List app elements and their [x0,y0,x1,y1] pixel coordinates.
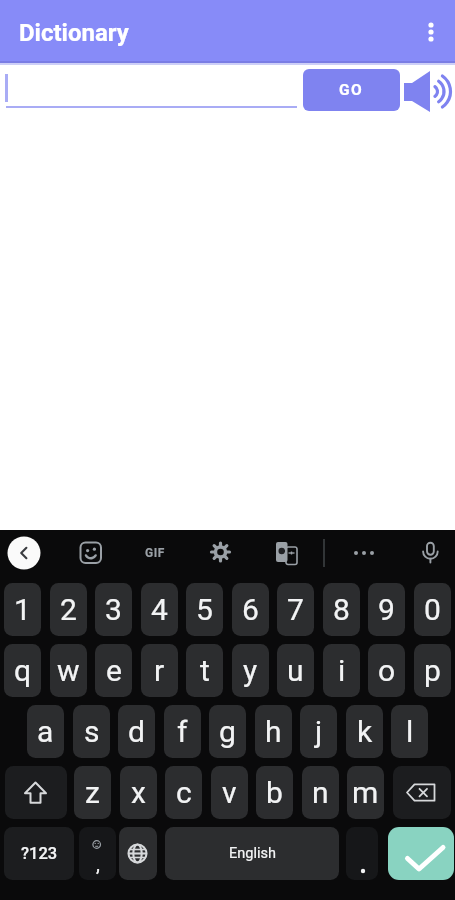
button[interactable]: 2 [50,583,87,636]
staticText: l [406,714,414,749]
button[interactable] [269,535,305,571]
button[interactable]: 3 [95,583,132,636]
button[interactable]: g [209,705,246,758]
button[interactable]: p [414,644,451,697]
button[interactable] [413,14,449,50]
staticText: j [315,714,323,749]
button[interactable]: GIF [137,535,173,571]
staticText: , [96,852,100,875]
staticText: i [338,653,346,688]
button[interactable]: w [50,644,87,697]
button[interactable]: f [164,705,201,758]
staticText: r [154,653,165,688]
staticText: English [229,845,276,862]
staticText: t [200,653,210,688]
staticText: 4 [151,592,168,627]
button[interactable] [346,827,378,880]
button[interactable]: d [118,705,155,758]
staticText: g [219,714,236,749]
button[interactable] [0,64,300,112]
button[interactable]: h [255,705,292,758]
staticText: w [57,653,80,688]
staticText: GO [339,81,364,99]
staticText: c [176,775,192,810]
staticText: a [37,714,54,749]
button[interactable]: j [300,705,337,758]
button[interactable] [388,827,454,880]
button[interactable] [73,535,109,571]
button[interactable]: 9 [368,583,405,636]
button[interactable]: q [4,644,41,697]
button[interactable]: 7 [277,583,314,636]
button[interactable]: k [346,705,383,758]
button[interactable]: x [120,766,157,819]
staticText: q [14,653,32,688]
button[interactable]: t [186,644,223,697]
staticText: Dictionary [19,19,129,47]
button[interactable]: r [141,644,178,697]
staticText: h [265,714,282,749]
button[interactable]: c [165,766,202,819]
button[interactable]: l [391,705,428,758]
staticText: o [378,653,396,688]
staticText: k [357,714,373,749]
button[interactable]: 6 [232,583,269,636]
staticText: 8 [333,592,350,627]
button[interactable] [5,766,67,819]
button[interactable] [6,535,42,571]
button[interactable]: u [277,644,314,697]
staticText: e [106,653,122,688]
button[interactable]: 1 [4,583,41,636]
button[interactable] [204,535,240,571]
button[interactable]: i [323,644,360,697]
staticText: s [84,714,100,749]
staticText: d [128,714,145,749]
button[interactable] [119,827,157,880]
button[interactable]: 0 [414,583,451,636]
button[interactable]: y [232,644,269,697]
button[interactable]: GO [303,69,400,111]
button[interactable]: m [347,766,384,819]
staticText: z [85,775,100,810]
button[interactable]: , [79,827,116,880]
button[interactable]: a [27,705,64,758]
staticText: GIF [145,546,165,560]
button[interactable]: v [211,766,248,819]
staticText: b [266,775,283,810]
button[interactable]: English [165,827,339,880]
staticText: u [287,653,304,688]
button[interactable] [346,535,382,571]
staticText: ?123 [21,844,58,863]
staticText: 6 [242,592,259,627]
staticText: 0 [424,592,441,627]
staticText: 2 [60,592,77,627]
staticText: m [352,775,379,810]
button[interactable]: 8 [323,583,360,636]
button[interactable] [412,535,448,571]
button[interactable] [393,766,451,819]
staticText: x [131,775,146,810]
button[interactable]: b [256,766,293,819]
button[interactable]: s [73,705,110,758]
button[interactable]: o [368,644,405,697]
button[interactable]: ?123 [4,827,74,880]
staticText: 9 [378,592,395,627]
staticText: v [222,775,237,810]
staticText: 3 [105,592,122,627]
staticText: 5 [196,592,213,627]
button[interactable] [401,64,455,116]
staticText: y [243,653,258,688]
staticText: 7 [287,592,304,627]
button[interactable]: 5 [186,583,223,636]
button[interactable]: n [302,766,339,819]
staticText: n [312,775,329,810]
button[interactable]: 4 [141,583,178,636]
button[interactable]: z [74,766,111,819]
button[interactable]: e [95,644,132,697]
staticText: 1 [14,592,31,627]
staticText: p [424,653,441,688]
staticText: f [177,714,188,749]
